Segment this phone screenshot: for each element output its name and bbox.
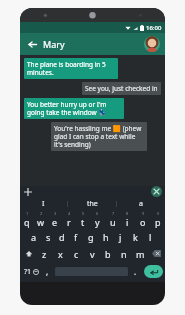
button[interactable]: n [116, 245, 132, 262]
button[interactable]: Shift [20, 245, 37, 262]
staticText: e [52, 216, 58, 228]
staticText: v [90, 248, 95, 260]
button[interactable]: I [20, 197, 67, 210]
staticText: g [88, 231, 94, 243]
button[interactable]: v [84, 245, 100, 262]
button[interactable]: See you, just checked in [82, 82, 161, 95]
button[interactable]: The plane is boarding in 5 minutes. [24, 58, 118, 79]
staticText: 8 [126, 211, 129, 216]
staticText: 0 [157, 211, 160, 216]
staticText: l [149, 231, 152, 243]
staticText: a [31, 231, 37, 243]
button[interactable]: j [113, 228, 128, 245]
button[interactable]: the [68, 197, 116, 210]
staticText: o [140, 216, 146, 228]
button[interactable]: d [55, 228, 69, 245]
button[interactable]: l [143, 228, 158, 245]
button[interactable]: m [132, 245, 148, 262]
staticText: c [74, 248, 79, 260]
button[interactable]: k [128, 228, 143, 245]
button[interactable]: . [130, 262, 141, 281]
button[interactable]: 3 [48, 211, 62, 228]
button[interactable]: 1 [20, 211, 34, 228]
button[interactable]: 8 [120, 211, 135, 228]
button[interactable]: You're hassling me 🟧 (phew glad I can st… [51, 122, 147, 151]
staticText: Mary [43, 38, 65, 50]
button[interactable]: z [37, 245, 52, 262]
staticText: s [46, 231, 51, 243]
button[interactable]: Cancel sending [151, 186, 162, 197]
button[interactable]: 4 [62, 211, 76, 228]
staticText: m [136, 248, 145, 260]
staticText: 5 [82, 211, 85, 216]
button[interactable]: 0 [150, 211, 165, 228]
button[interactable]: Attach [23, 187, 33, 197]
staticText: p [155, 216, 161, 228]
button[interactable]: 6 [90, 211, 105, 228]
staticText: q [24, 216, 30, 228]
staticText: d [59, 231, 65, 243]
staticText: 6 [96, 211, 99, 216]
staticText: x [58, 248, 63, 260]
button[interactable]: 5 [76, 211, 90, 228]
staticText: 1 [26, 211, 29, 216]
button[interactable]: a [27, 228, 41, 245]
button[interactable]: 2 [34, 211, 48, 228]
staticText: f [74, 231, 78, 243]
staticText: 2 [40, 211, 43, 216]
staticText: . [134, 266, 137, 277]
button[interactable]: c [68, 245, 84, 262]
staticText: h [103, 231, 109, 243]
button[interactable]: a [117, 197, 165, 210]
staticText: b [105, 248, 111, 260]
staticText: 4 [68, 211, 71, 216]
staticText: the [87, 199, 98, 209]
staticText: a [139, 199, 143, 209]
staticText: 3 [54, 211, 57, 216]
button[interactable]: ?1 [20, 262, 42, 281]
staticText: 9 [142, 211, 145, 216]
button[interactable]: Back [25, 37, 39, 51]
button[interactable]: f [69, 228, 83, 245]
staticText: t [81, 216, 85, 228]
button[interactable]: s [41, 228, 55, 245]
button[interactable]: g [83, 228, 98, 245]
staticText: r [67, 216, 71, 228]
staticText: n [121, 248, 127, 260]
staticText: 7 [112, 211, 115, 216]
button[interactable]: Send [144, 265, 163, 278]
button[interactable]: x [52, 245, 68, 262]
button[interactable]: 7 [105, 211, 120, 228]
button[interactable]: b [100, 245, 116, 262]
staticText: You better hurry up or I'm going take th… [27, 100, 121, 117]
staticText: y [95, 216, 100, 228]
staticText: You're hassling me 🟧 (phew glad I can st… [54, 124, 144, 149]
button[interactable]: h [98, 228, 113, 245]
staticText: u [110, 216, 116, 228]
button[interactable]: , [42, 262, 53, 281]
staticText: j [119, 231, 122, 243]
staticText: ?1 [24, 267, 32, 277]
button[interactable]: Contact photo [144, 36, 160, 52]
button[interactable]: You better hurry up or I'm going take th… [24, 98, 124, 119]
staticText: I [42, 199, 45, 209]
staticText: , [46, 266, 49, 277]
staticText: z [42, 248, 47, 260]
staticText: See you, just checked in [85, 84, 158, 93]
staticText: w [37, 216, 45, 228]
staticText: 16:00 [146, 24, 162, 32]
staticText: The plane is boarding in 5 minutes. [27, 60, 115, 77]
button[interactable]: 9 [135, 211, 150, 228]
button[interactable]: Backspace [148, 245, 165, 262]
staticText: i [126, 216, 129, 228]
staticText: k [133, 231, 138, 243]
